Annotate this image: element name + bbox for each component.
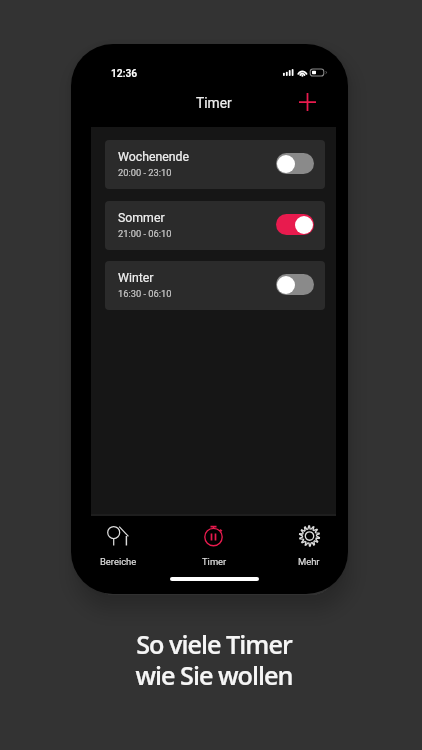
- staticText: Mehr: [298, 556, 320, 567]
- button[interactable]: Add timer: [291, 89, 323, 115]
- button[interactable]: Turn timer off: [276, 214, 314, 235]
- staticText: Bereiche: [100, 556, 137, 567]
- button[interactable]: Mehr: [277, 524, 336, 567]
- staticText: 20:00 - 23:10: [118, 167, 172, 178]
- staticText: Sommer: [118, 211, 165, 225]
- button[interactable]: Timer: [182, 524, 246, 567]
- button[interactable]: Winter: [105, 261, 325, 310]
- staticText: Wochenende: [118, 150, 190, 164]
- staticText: Timer: [196, 95, 232, 111]
- button[interactable]: Wochenende: [105, 140, 325, 189]
- staticText: 12:36: [111, 67, 138, 79]
- button[interactable]: Sommer: [105, 201, 325, 250]
- staticText: Timer: [202, 556, 227, 567]
- button[interactable]: Turn timer on: [276, 153, 314, 174]
- button[interactable]: Bereiche: [91, 524, 150, 567]
- staticText: wie Sie wollen: [135, 658, 293, 692]
- button[interactable]: Turn timer on: [276, 274, 314, 295]
- staticText: 21:00 - 06:10: [118, 228, 172, 239]
- staticText: So viele Timer: [136, 627, 292, 661]
- staticText: Winter: [118, 271, 154, 285]
- staticText: 16:30 - 06:10: [118, 288, 172, 299]
